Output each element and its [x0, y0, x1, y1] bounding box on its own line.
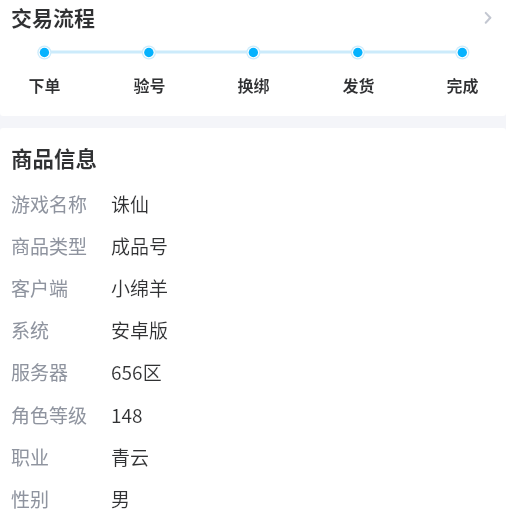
- staticText: 角色等级: [11, 401, 88, 429]
- staticText: 性别: [11, 485, 50, 513]
- button[interactable]: 验号: [109, 73, 189, 95]
- button[interactable]: 游戏名称: [0, 190, 506, 232]
- staticText: 安卓版: [111, 316, 169, 344]
- staticText: 游戏名称: [11, 190, 88, 218]
- button[interactable]: 客户端: [0, 274, 506, 316]
- button[interactable]: 下单: [4, 73, 84, 95]
- staticText: 服务器: [11, 358, 69, 386]
- staticText: 商品类型: [11, 232, 88, 260]
- staticText: 客户端: [11, 274, 69, 302]
- button[interactable]: 职业: [0, 443, 506, 485]
- staticText: 成品号: [111, 232, 169, 260]
- staticText: 下单: [28, 73, 61, 95]
- button[interactable]: 完成: [422, 73, 502, 95]
- staticText: 青云: [111, 443, 150, 471]
- staticText: 完成: [446, 73, 479, 95]
- staticText: 职业: [11, 443, 50, 471]
- staticText: 656区: [111, 358, 162, 386]
- staticText: 验号: [133, 73, 166, 95]
- button[interactable]: 发货: [318, 73, 398, 95]
- button[interactable]: 服务器: [0, 358, 506, 400]
- staticText: 系统: [11, 316, 50, 344]
- staticText: 诛仙: [111, 190, 150, 218]
- button[interactable]: 性别: [0, 485, 506, 518]
- other: 查看交易流程: [478, 7, 498, 27]
- button[interactable]: 系统: [0, 316, 506, 358]
- button[interactable]: 角色等级: [0, 401, 506, 443]
- button[interactable]: 换绑: [213, 73, 293, 95]
- staticText: 发货: [342, 73, 375, 95]
- staticText: 交易流程: [11, 2, 95, 32]
- button[interactable]: 交易流程: [0, 0, 506, 34]
- button[interactable]: 商品类型: [0, 232, 506, 274]
- staticText: 男: [111, 485, 131, 513]
- staticText: 换绑: [237, 73, 270, 95]
- staticText: 小绵羊: [111, 274, 169, 302]
- staticText: 商品信息: [11, 142, 98, 173]
- button[interactable]: 商品信息: [11, 142, 98, 173]
- staticText: 148: [111, 401, 143, 429]
